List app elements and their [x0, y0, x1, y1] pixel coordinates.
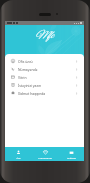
button[interactable]: Xidmət haqqında — [5, 89, 84, 97]
staticText: Mfc — [35, 29, 53, 42]
button[interactable]: Mağaza — [58, 147, 84, 161]
staticText: Vitrin — [18, 75, 27, 80]
button[interactable]: Vitrin — [5, 73, 84, 81]
staticText: İstəyinizi yazın — [18, 83, 42, 88]
button[interactable]: İstəyinizi yazın — [5, 81, 84, 89]
button[interactable]: Nümayəndə — [32, 147, 58, 161]
staticText: Nümayəndə — [18, 67, 38, 72]
staticText: Ofis üzvü — [18, 59, 33, 64]
staticText: Xidmət haqqında — [18, 91, 46, 96]
staticText: Üzv — [16, 156, 21, 159]
staticText: Nümayəndə — [38, 156, 52, 159]
staticText: Mağaza — [67, 156, 76, 159]
button[interactable]: Üzv — [5, 147, 32, 161]
button[interactable]: Nümayəndə — [5, 65, 84, 73]
button[interactable]: Ofis üzvü — [5, 57, 84, 65]
